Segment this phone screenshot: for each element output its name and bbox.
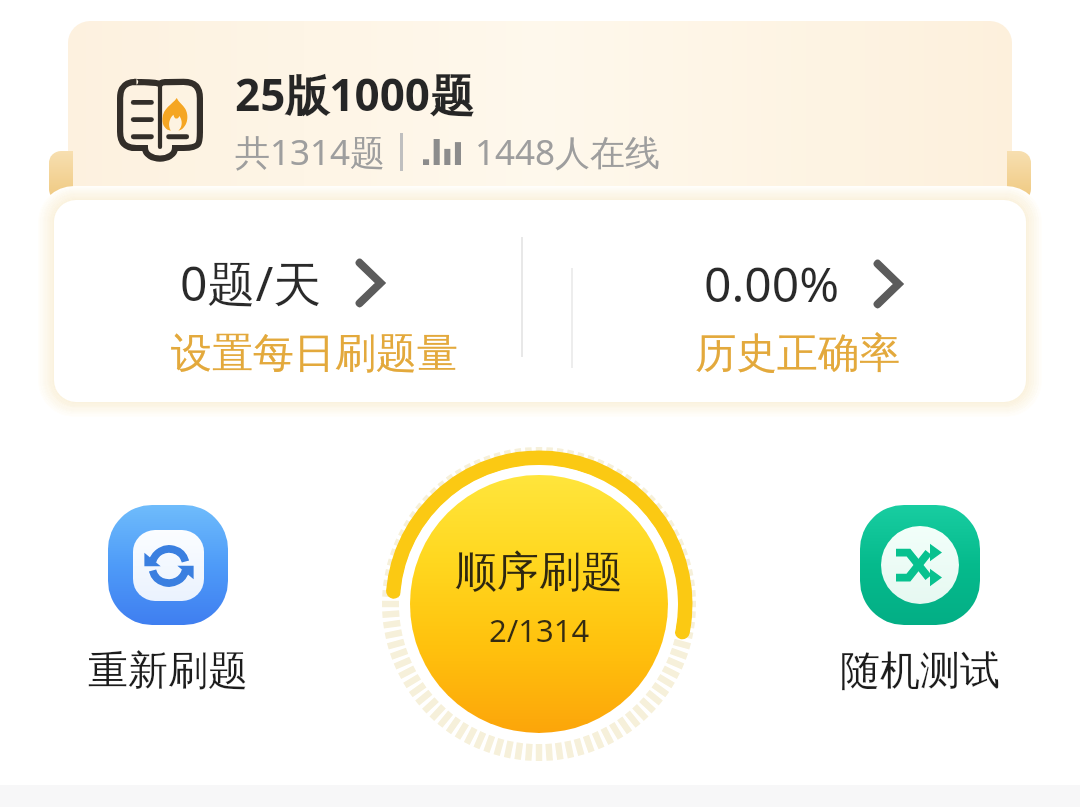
staticText: 重新刷题 [88,645,248,695]
staticText: 设置每日刷题量 [171,328,458,380]
button[interactable]: 重新刷题 [4,505,332,695]
button[interactable]: 25版1000题 [68,21,1012,211]
button[interactable]: 随机测试 [756,505,1080,695]
staticText: 25版1000题 [235,64,475,124]
staticText: 共1314题 [235,128,386,176]
button[interactable]: 顺序刷题 [382,447,696,761]
button[interactable]: 0.00% [597,214,997,416]
staticText: 0.00% [704,251,840,316]
staticText: 0题/天 [180,250,322,316]
other: 随机测试 [895,540,945,590]
staticText: 随机测试 [840,645,1000,695]
staticText: 2/1314 [489,609,590,651]
button[interactable]: 0题/天 [114,214,514,416]
staticText: 1448人在线 [475,128,661,176]
staticText: 顺序刷题 [455,546,623,599]
other: 重新刷题 [141,538,197,594]
staticText: 历史正确率 [695,328,900,380]
